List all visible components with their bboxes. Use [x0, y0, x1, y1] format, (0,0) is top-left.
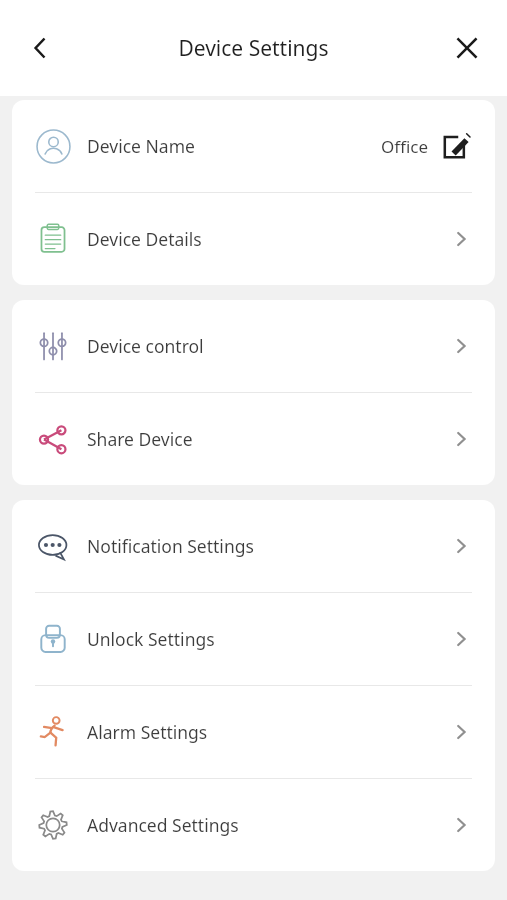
button[interactable]: Advanced Settings: [12, 779, 495, 871]
staticText: Office: [381, 135, 429, 158]
button[interactable]: Unlock Settings: [12, 593, 495, 685]
staticText: Advanced Settings: [87, 813, 239, 837]
staticText: Device Settings: [178, 34, 329, 63]
staticText: Device control: [87, 334, 204, 358]
staticText: Device Details: [87, 227, 202, 251]
button[interactable]: Share Device: [12, 393, 495, 485]
staticText: Device Name: [87, 134, 195, 158]
staticText: Alarm Settings: [87, 720, 208, 744]
button[interactable]: Device Details: [12, 193, 495, 285]
button[interactable]: Device Name: [12, 100, 495, 192]
button[interactable]: Device control: [12, 300, 495, 392]
staticText: Share Device: [87, 427, 193, 451]
button[interactable]: Back: [14, 22, 66, 74]
staticText: Notification Settings: [87, 534, 254, 558]
button[interactable]: Close: [441, 22, 493, 74]
other: Edit device name: [441, 131, 471, 161]
button[interactable]: Alarm Settings: [12, 686, 495, 778]
button[interactable]: Notification Settings: [12, 500, 495, 592]
staticText: Unlock Settings: [87, 627, 215, 651]
